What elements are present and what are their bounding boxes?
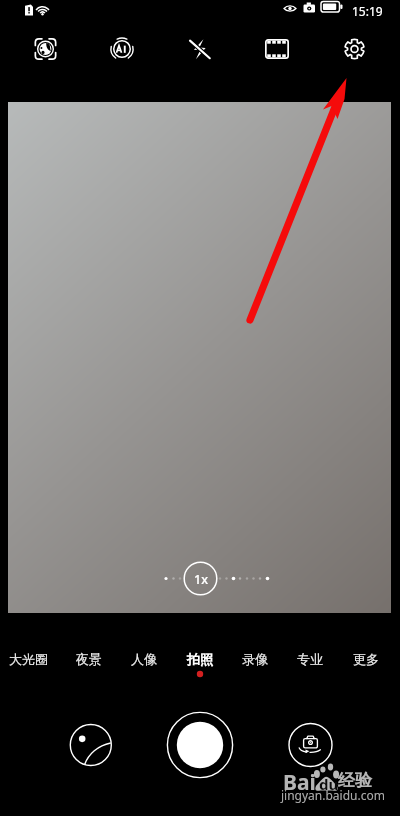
button[interactable]: 大光圈	[9, 648, 48, 670]
staticText: 录像	[242, 651, 268, 667]
button[interactable]: Zoom 1x	[182, 561, 218, 597]
button[interactable]: Smart recognition	[26, 29, 66, 69]
button[interactable]: 录像	[242, 648, 268, 670]
staticText: 人像	[131, 651, 157, 667]
button[interactable]: 更多	[353, 648, 379, 670]
button[interactable]: 人像	[131, 648, 157, 670]
button[interactable]: AI scene	[102, 29, 142, 69]
staticText: 专业	[297, 651, 323, 667]
staticText: du	[319, 774, 339, 794]
staticText: 大光圈	[9, 651, 48, 667]
staticText: 经验	[338, 770, 372, 791]
button[interactable]: 专业	[297, 648, 323, 670]
staticText: 夜景	[76, 651, 102, 667]
button[interactable]: Gallery	[70, 724, 112, 766]
button[interactable]: Switch camera	[289, 723, 333, 767]
staticText: Bai	[283, 768, 316, 797]
staticText: 更多	[353, 651, 379, 667]
staticText: 拍照	[187, 651, 213, 667]
staticText: 1x	[194, 571, 208, 588]
staticText: jingyan.baidu.com	[281, 787, 385, 803]
button[interactable]: Shutter	[166, 711, 234, 779]
staticText: 15:19	[352, 3, 383, 19]
button[interactable]: 拍照	[187, 648, 213, 670]
button[interactable]: Settings	[335, 29, 375, 69]
button[interactable]: 夜景	[76, 648, 102, 670]
button[interactable]: Flash off	[179, 29, 219, 69]
button[interactable]: Filters	[257, 29, 297, 69]
